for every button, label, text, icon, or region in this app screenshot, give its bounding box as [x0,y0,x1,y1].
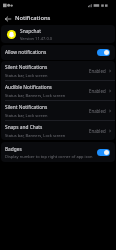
staticText: Status bar, Lock screen [5,73,48,78]
button[interactable]: Silent Notifications [1,101,115,120]
staticText: Enabled [89,88,106,94]
button[interactable]: Snapchat [1,25,115,43]
staticText: Badges [5,146,22,153]
button[interactable]: Toggle [97,149,110,156]
staticText: Allow notifications [5,49,97,56]
staticText: Display number to top right corner of ap… [5,154,93,159]
staticText: Notifications [15,14,51,22]
staticText: Enabled [89,68,106,74]
staticText: Status bar, Lock screen [5,113,48,118]
staticText: Silent Notifications [5,104,48,111]
button[interactable]: Badges [1,142,115,162]
staticText: Snapchat [20,28,41,35]
button[interactable]: Back [2,13,13,24]
staticText: Silent Notifications [5,64,48,71]
staticText: Snaps and Chats [5,124,43,131]
button[interactable]: Silent Notifications [1,61,115,80]
button[interactable]: Audible Notifications [1,81,115,100]
button[interactable]: Toggle [97,49,110,56]
staticText: Version 11.47.0.0 [20,36,53,41]
staticText: Status bar, Banners, Lock screen [5,93,66,98]
button[interactable]: Snaps and Chats [1,121,115,140]
staticText: Status bar, Banners, Lock screen [5,133,66,138]
button[interactable]: Allow notifications [1,45,115,60]
staticText: Audible Notifications [5,84,52,91]
staticText: Enabled [89,108,106,114]
staticText: Enabled [89,128,106,134]
